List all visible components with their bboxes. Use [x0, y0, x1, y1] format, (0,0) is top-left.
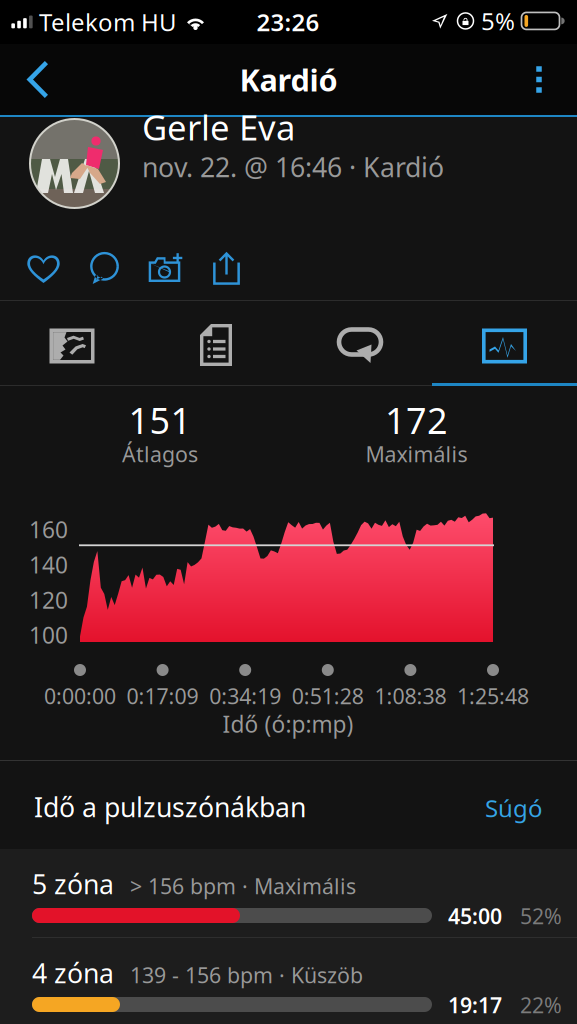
staticText: 22%: [520, 991, 562, 1019]
staticText: Gerle Eva: [142, 104, 295, 150]
staticText: Idő a pulzuszónákban: [34, 789, 306, 825]
staticText: 19:17: [448, 991, 502, 1019]
staticText: 139 - 156 bpm · Küszöb: [130, 961, 363, 989]
staticText: 0:17:09: [127, 682, 199, 710]
staticText: 151: [128, 396, 191, 444]
staticText: Telekom HU: [39, 6, 177, 38]
staticText: 140: [29, 550, 68, 580]
staticText: 45:00: [448, 902, 502, 930]
staticText: nov. 22. @ 16:46 · Kardió: [142, 149, 444, 185]
staticText: 5%: [481, 5, 515, 37]
staticText: 120: [29, 585, 68, 615]
button[interactable]: Share: [196, 238, 257, 298]
button[interactable]: Add photo: [135, 238, 196, 298]
staticText: 52%: [520, 902, 562, 930]
staticText: Maximális: [365, 440, 467, 468]
button[interactable]: Súgó: [463, 794, 543, 822]
staticText: 100: [29, 620, 68, 650]
button[interactable]: Laps: [288, 301, 432, 383]
staticText: 0:00:00: [44, 682, 116, 710]
button[interactable]: More options: [504, 44, 577, 115]
staticText: 5 zóna: [32, 866, 114, 902]
staticText: 160: [29, 514, 68, 545]
staticText: > 156 bpm · Maximális: [130, 872, 356, 900]
staticText: Átlagos: [122, 440, 198, 468]
button[interactable]: Back: [0, 44, 72, 115]
button[interactable]: Map: [0, 301, 144, 383]
staticText: 172: [385, 396, 448, 444]
staticText: Idő (ó:p:mp): [222, 709, 353, 739]
button[interactable]: Comment: [74, 238, 135, 298]
staticText: 23:26: [256, 6, 319, 38]
staticText: Súgó: [485, 792, 543, 824]
staticText: Kardió: [239, 59, 337, 100]
button[interactable]: Details: [144, 301, 288, 383]
staticText: 1:25:48: [457, 682, 529, 710]
button[interactable]: Heart rate: [432, 301, 577, 383]
staticText: 0:34:19: [209, 682, 281, 710]
staticText: 4 zóna: [32, 955, 114, 991]
staticText: 0:51:28: [292, 682, 364, 710]
button[interactable]: Kudos: [13, 238, 74, 298]
staticText: 1:08:38: [374, 682, 446, 710]
